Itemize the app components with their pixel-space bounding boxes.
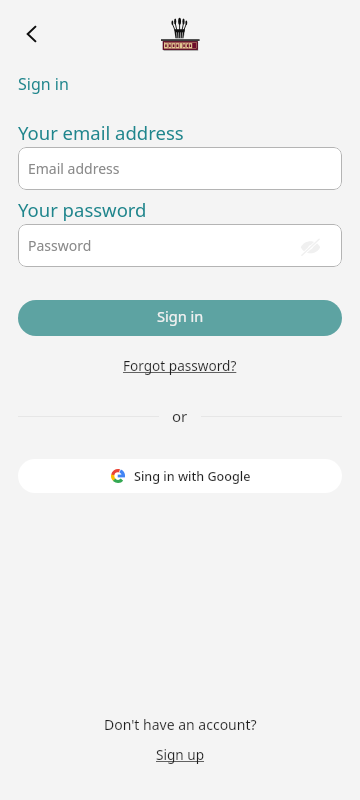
button[interactable]: Show password: [298, 235, 322, 259]
button[interactable]: Forgot password?: [123, 356, 237, 375]
staticText: or: [172, 406, 188, 426]
button[interactable]: Sing in with Google: [18, 459, 342, 493]
staticText: Your email address: [18, 120, 184, 145]
staticText: Password: [28, 236, 92, 255]
button[interactable]: Sign up: [156, 745, 205, 764]
button[interactable]: Password: [18, 224, 342, 267]
button[interactable]: Back: [16, 18, 48, 50]
staticText: Email address: [28, 159, 120, 178]
staticText: Sing in with Google: [134, 468, 251, 485]
button[interactable]: Sign in: [18, 300, 342, 336]
button[interactable]: Email address: [18, 147, 342, 190]
staticText: Your password: [18, 197, 147, 222]
staticText: Sign in: [157, 306, 204, 326]
staticText: Don't have an account?: [104, 715, 257, 734]
button[interactable]: Sign in: [18, 73, 69, 95]
